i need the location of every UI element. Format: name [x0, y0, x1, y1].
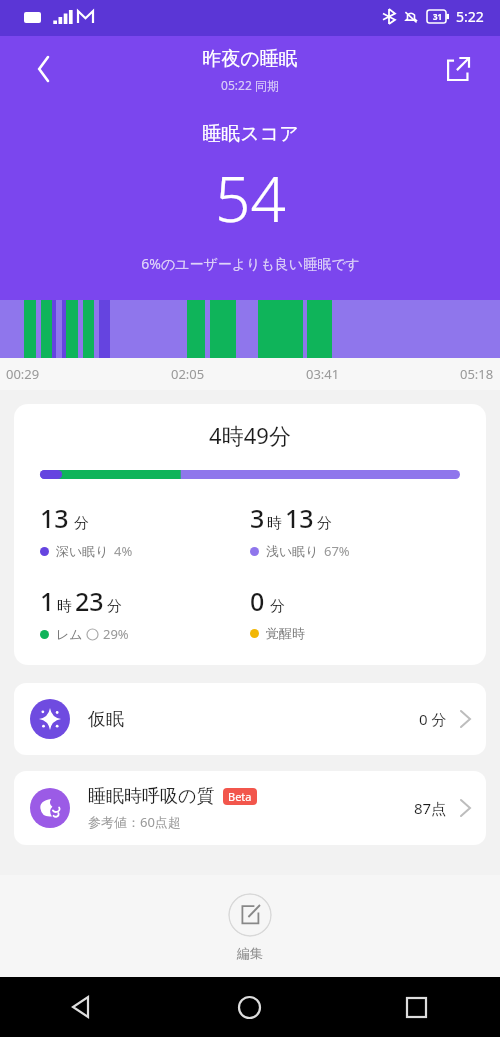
staticText: 54	[215, 156, 286, 240]
button[interactable]: Back	[22, 47, 66, 91]
staticText: レム	[56, 626, 83, 642]
staticText: 時	[57, 597, 72, 616]
staticText: 03:41	[306, 365, 340, 383]
staticText: 深い眠り	[56, 543, 109, 559]
staticText: 13	[285, 501, 314, 535]
staticText: 3	[250, 501, 265, 535]
staticText: 1	[40, 584, 55, 618]
staticText: 13	[40, 501, 69, 535]
staticText: 0 分	[419, 709, 447, 729]
staticText: 29%	[103, 625, 129, 643]
staticText: Beta	[228, 789, 252, 804]
button[interactable]: 仮眠	[14, 683, 486, 755]
staticText: 00:29	[6, 365, 40, 383]
staticText: 編集	[237, 945, 263, 961]
staticText: 睡眠時呼吸の質	[88, 785, 215, 808]
staticText: 87点	[414, 798, 447, 818]
staticText: 浅い眠り	[266, 543, 319, 559]
staticText: 4%	[114, 542, 133, 560]
staticText: 参考値：60点超	[88, 813, 181, 831]
staticText: 0	[250, 584, 265, 618]
staticText: 4時49分	[14, 420, 486, 450]
staticText: 31	[433, 11, 443, 22]
button[interactable]: Home	[166, 977, 333, 1037]
staticText: 時	[267, 514, 282, 533]
staticText: 05:18	[460, 365, 494, 383]
staticText: 昨夜の睡眠	[202, 47, 298, 71]
button[interactable]: Back	[0, 977, 166, 1037]
staticText: 分	[317, 514, 332, 533]
button[interactable]: Share	[436, 47, 480, 91]
button[interactable]: 編集	[216, 891, 284, 963]
button[interactable]: Recents	[333, 977, 500, 1037]
staticText: 分	[74, 514, 89, 533]
staticText: 67%	[324, 542, 350, 560]
button[interactable]: 睡眠時呼吸の質	[14, 771, 486, 845]
staticText: 02:05	[171, 365, 205, 383]
staticText: 仮眠	[88, 708, 124, 731]
staticText: 05:22 同期	[221, 77, 279, 93]
staticText: 5:22	[456, 7, 484, 26]
staticText: 分	[107, 597, 122, 616]
staticText: 23	[75, 584, 104, 618]
staticText: 6%のユーザーよりも良い睡眠です	[141, 254, 360, 273]
staticText: 分	[270, 597, 285, 616]
staticText: 睡眠スコア	[202, 122, 299, 146]
staticText: 覚醒時	[266, 625, 305, 641]
